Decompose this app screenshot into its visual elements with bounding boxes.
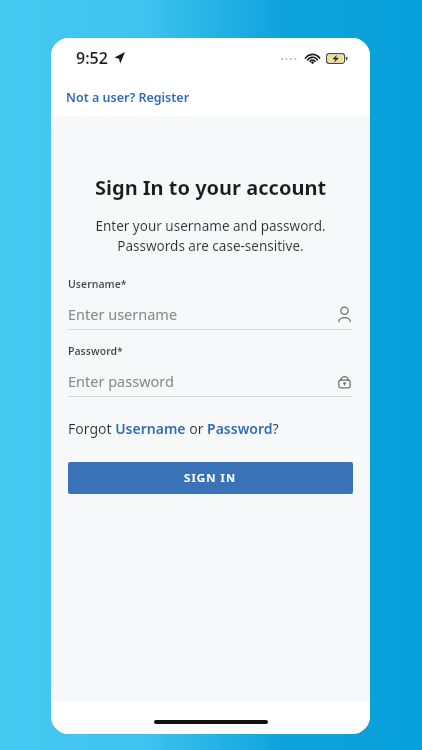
button[interactable]: Forgot Username or Password? <box>68 417 279 440</box>
staticText: Forgot Username or Password? <box>68 419 279 438</box>
staticText: 9:52 <box>76 47 108 69</box>
staticText: Password* <box>68 344 123 358</box>
staticText: SIGN IN <box>184 470 237 486</box>
staticText: Enter username <box>68 304 178 324</box>
button[interactable]: Enter username <box>68 299 353 330</box>
staticText: Enter your username and password. Passwo… <box>74 217 347 255</box>
staticText: Enter password <box>68 371 174 391</box>
other: Password <box>336 373 353 390</box>
button[interactable]: Not a user? Register <box>64 85 192 110</box>
staticText: Username* <box>68 277 127 291</box>
button[interactable]: Enter password <box>68 366 353 397</box>
button[interactable]: SIGN IN <box>68 462 353 494</box>
staticText: Sign In to your account <box>95 174 327 201</box>
other: Username <box>336 306 353 323</box>
staticText: Not a user? Register <box>66 89 190 106</box>
